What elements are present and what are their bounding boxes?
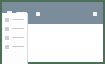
button[interactable]: Open navigation drawer <box>5 9 14 18</box>
button[interactable]: Search <box>33 9 42 18</box>
button[interactable] <box>2 15 28 24</box>
button[interactable] <box>2 33 28 42</box>
button[interactable] <box>2 42 28 51</box>
button[interactable] <box>2 24 28 33</box>
button[interactable]: More options <box>90 9 99 18</box>
